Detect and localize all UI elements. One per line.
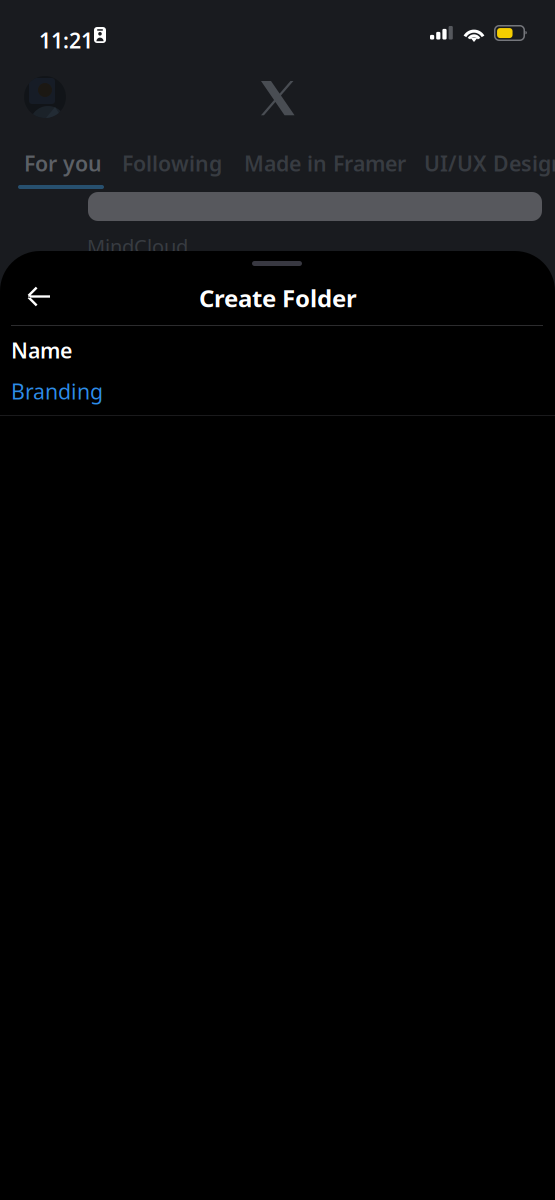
button[interactable]: Following bbox=[122, 149, 222, 177]
staticText: MindCloud bbox=[87, 233, 188, 260]
staticText: Name bbox=[11, 336, 72, 364]
staticText: Branding bbox=[11, 377, 103, 405]
staticText: UI/UX Design bbox=[424, 149, 555, 177]
button[interactable]: Made in Framer bbox=[244, 149, 406, 177]
staticText: For you bbox=[24, 149, 102, 177]
button[interactable]: For you bbox=[24, 149, 102, 177]
staticText: Made in Framer bbox=[244, 149, 406, 177]
button[interactable]: Account bbox=[18, 70, 72, 124]
button[interactable]: Back bbox=[14, 274, 62, 319]
button[interactable]: UI/UX Design bbox=[424, 149, 555, 177]
staticText: 11:21 bbox=[39, 26, 93, 54]
staticText: Create Folder bbox=[199, 282, 357, 314]
staticText: Following bbox=[122, 149, 222, 177]
